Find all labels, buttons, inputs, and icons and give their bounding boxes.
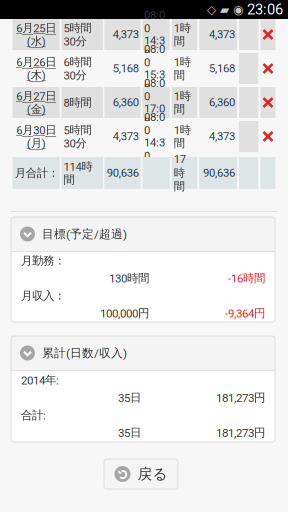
- staticText: 1時: [174, 89, 191, 103]
- staticText: 間: [63, 172, 74, 187]
- staticText: 4,373: [209, 130, 235, 143]
- staticText: 23:06: [247, 1, 283, 18]
- staticText: ▰: [220, 2, 229, 16]
- staticText: 130時間: [109, 271, 149, 285]
- staticText: -9,364円: [225, 306, 265, 320]
- staticText: 6,360: [113, 96, 139, 109]
- staticText: -16時間: [228, 271, 265, 285]
- staticText: 1時: [174, 21, 191, 35]
- staticText: 181,273円: [216, 425, 265, 440]
- staticText: 14:30: [144, 34, 165, 61]
- staticText: 月勤務：: [21, 254, 65, 268]
- staticText: 4,373: [113, 28, 139, 41]
- staticText: 間: [174, 136, 185, 150]
- staticText: ◉: [233, 2, 243, 16]
- staticText: 14:30: [144, 136, 165, 163]
- staticText: 90,636: [203, 166, 235, 180]
- staticText: (月): [27, 136, 46, 150]
- button[interactable]: 戻る: [104, 459, 178, 489]
- staticText: 181,273円: [216, 390, 265, 405]
- staticText: 5時間: [63, 21, 91, 35]
- staticText: 目標(予定/超過): [42, 227, 127, 241]
- staticText: 間: [174, 102, 185, 116]
- staticText: 100,000円: [100, 306, 149, 320]
- staticText: 2014年:: [21, 373, 59, 387]
- staticText: 4,373: [113, 130, 139, 143]
- staticText: 6時間: [63, 55, 91, 69]
- staticText: 08:00: [144, 76, 165, 103]
- staticText: 5,168: [113, 62, 139, 75]
- staticText: 8時間: [63, 95, 91, 110]
- staticText: 35日: [118, 425, 141, 440]
- button[interactable]: Delete: [260, 121, 275, 152]
- button[interactable]: Delete: [260, 53, 275, 84]
- staticText: 35日: [118, 390, 141, 405]
- staticText: 08:00: [144, 110, 165, 137]
- staticText: 15:30: [144, 68, 165, 95]
- staticText: (水): [27, 34, 46, 48]
- staticText: 4,373: [209, 28, 235, 41]
- staticText: 月合計：: [15, 166, 59, 180]
- staticText: (金): [27, 102, 46, 116]
- staticText: 間: [174, 68, 185, 82]
- staticText: 90,636: [107, 166, 139, 180]
- staticText: 6月30日: [16, 123, 56, 137]
- button[interactable]: Delete: [260, 87, 275, 118]
- staticText: 戻る: [137, 465, 167, 483]
- staticText: ◇: [207, 2, 216, 16]
- staticText: 間: [174, 179, 185, 193]
- staticText: 5,168: [209, 62, 235, 75]
- staticText: 1時: [174, 55, 191, 69]
- button[interactable]: Delete: [260, 19, 275, 50]
- staticText: 6月25日: [16, 21, 56, 35]
- staticText: 30分: [63, 68, 86, 82]
- staticText: 08:00: [144, 8, 165, 35]
- button[interactable]: 累計(日数/収入): [11, 336, 275, 370]
- staticText: 17時: [174, 153, 186, 180]
- staticText: 6月27日: [16, 89, 56, 103]
- staticText: 6,360: [209, 96, 235, 109]
- staticText: 6月26日: [16, 55, 56, 69]
- staticText: 30分: [63, 136, 86, 150]
- staticText: 間: [174, 34, 185, 48]
- staticText: 累計(日数/収入): [42, 346, 127, 360]
- staticText: 5時間: [63, 123, 91, 137]
- staticText: 114時: [63, 159, 92, 173]
- button[interactable]: 目標(予定/超過): [11, 217, 275, 251]
- staticText: 17:00: [144, 102, 165, 129]
- staticText: 月収入：: [21, 289, 65, 303]
- staticText: 30分: [63, 34, 86, 48]
- staticText: 08:00: [144, 42, 165, 69]
- staticText: 1時: [174, 123, 191, 137]
- staticText: 合計:: [21, 408, 46, 422]
- staticText: (木): [27, 68, 46, 82]
